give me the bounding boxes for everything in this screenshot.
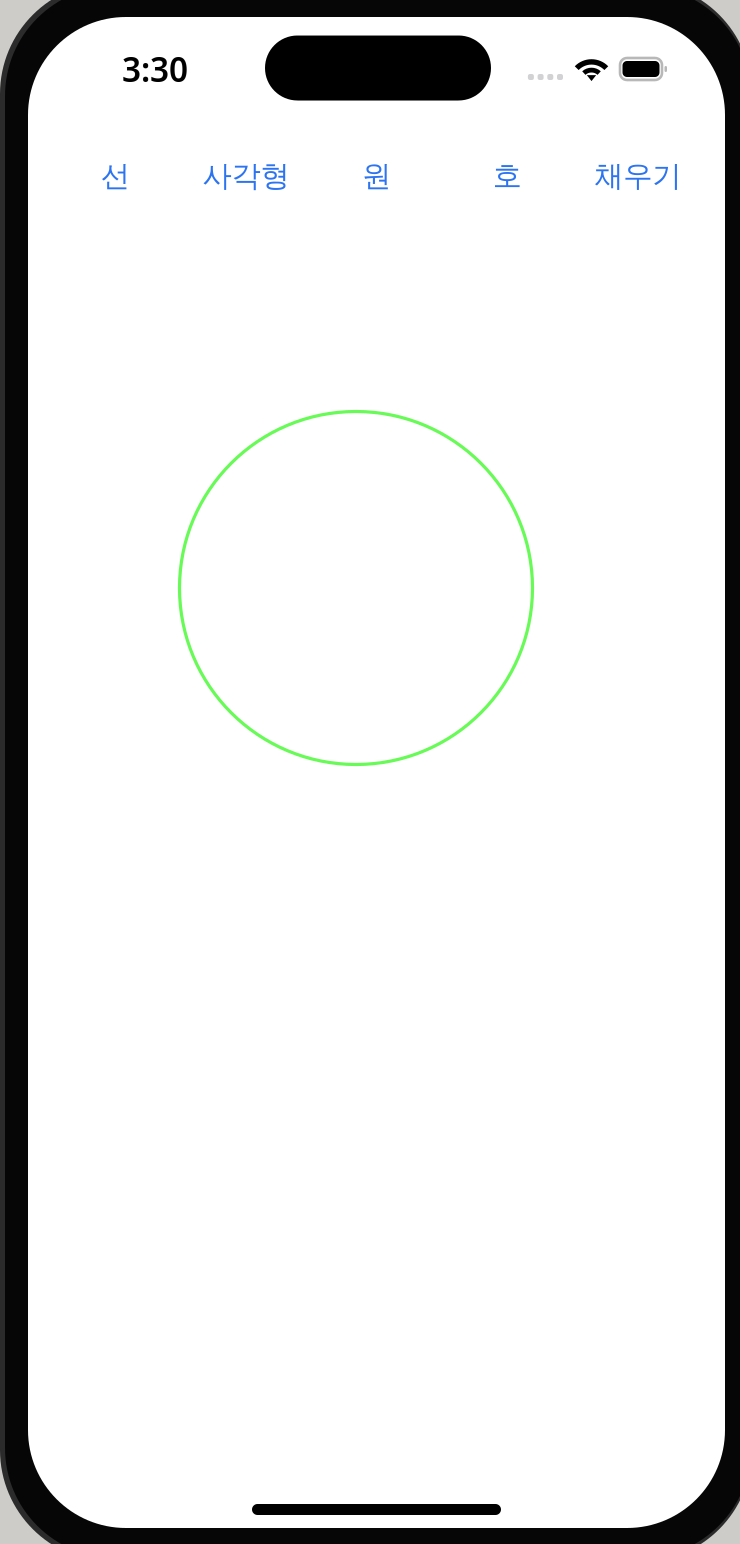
- staticText: 채우기: [594, 158, 681, 194]
- staticText: 원: [362, 158, 391, 194]
- staticText: 3:30: [122, 47, 188, 91]
- button[interactable]: 사각형: [181, 151, 311, 201]
- button[interactable]: 선: [50, 151, 181, 201]
- button[interactable]: 호: [442, 151, 572, 201]
- button[interactable]: 채우기: [572, 151, 703, 201]
- staticText: 선: [101, 158, 130, 194]
- button[interactable]: 원: [311, 151, 442, 201]
- staticText: 사각형: [202, 158, 289, 194]
- staticText: 호: [493, 158, 522, 194]
